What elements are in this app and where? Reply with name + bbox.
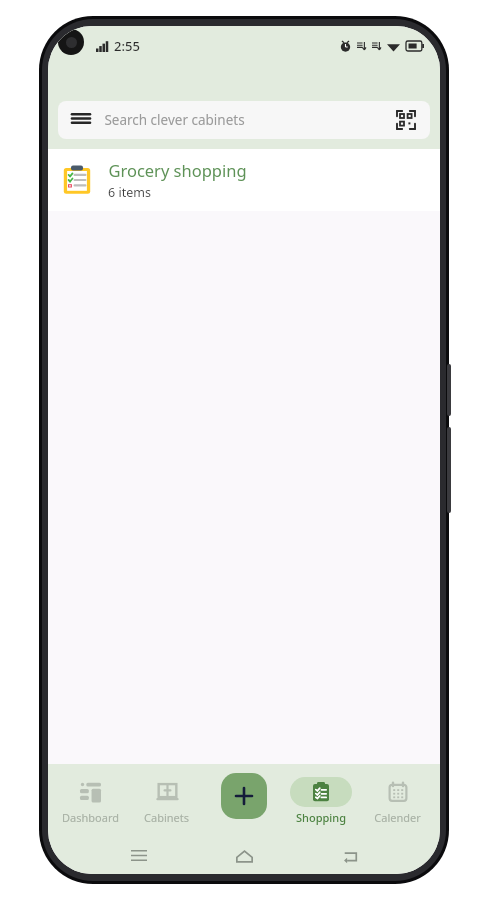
staticText: 2:55 bbox=[114, 37, 140, 55]
button[interactable]: Menu bbox=[70, 109, 92, 131]
staticText: 6 items bbox=[108, 184, 151, 201]
button[interactable]: Shopping bbox=[282, 773, 359, 829]
button[interactable]: Back bbox=[335, 841, 365, 871]
button[interactable]: Dashboard bbox=[52, 773, 128, 829]
staticText: Shopping bbox=[296, 810, 346, 825]
staticText: Calender bbox=[374, 810, 421, 825]
button[interactable]: Cabinets bbox=[128, 773, 205, 829]
button[interactable]: Home bbox=[229, 841, 259, 871]
button[interactable]: Grocery shopping bbox=[48, 149, 440, 211]
button[interactable]: Menu bbox=[58, 101, 430, 139]
staticText: Search clever cabinets bbox=[104, 111, 245, 129]
button[interactable]: Add bbox=[221, 773, 267, 819]
button[interactable]: Scan QR code bbox=[394, 108, 418, 132]
staticText: Dashboard bbox=[62, 810, 119, 825]
staticText: Grocery shopping bbox=[108, 159, 247, 181]
button[interactable]: Recents bbox=[124, 841, 154, 871]
staticText: Cabinets bbox=[144, 810, 189, 825]
button[interactable]: Calender bbox=[359, 773, 436, 829]
